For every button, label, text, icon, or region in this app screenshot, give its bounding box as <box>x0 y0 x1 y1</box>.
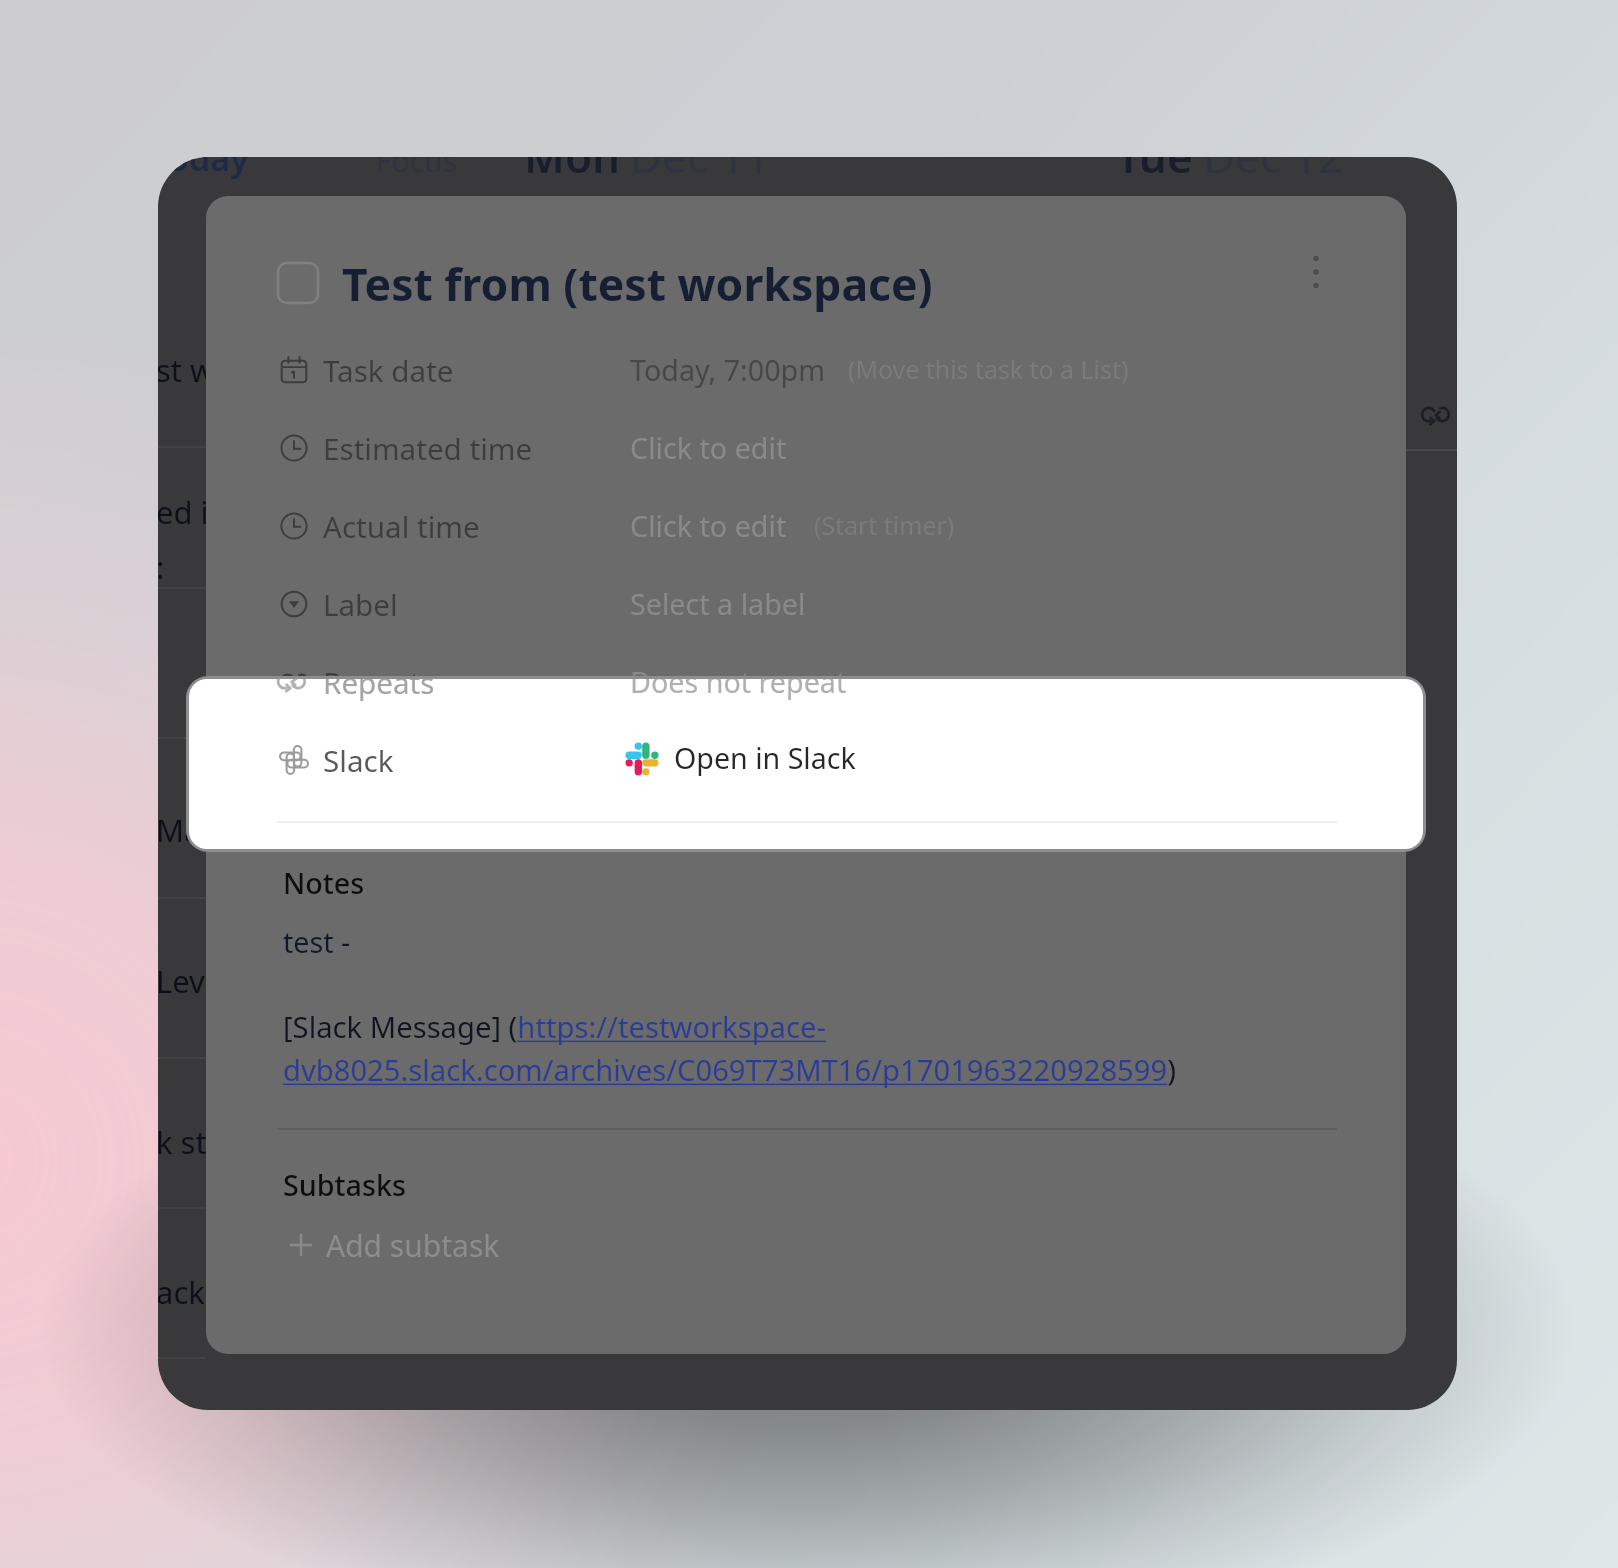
staticText: ack i <box>158 1271 221 1313</box>
staticText: Label <box>323 584 398 624</box>
staticText: Task date <box>323 350 454 390</box>
staticText: Slack <box>323 740 394 780</box>
staticText: Dec 12 <box>1203 157 1343 186</box>
staticText: Leve <box>158 960 223 1002</box>
staticText: st w <box>158 349 215 391</box>
staticText: Open in Slack <box>674 738 856 777</box>
staticText: Click to edit <box>630 428 787 467</box>
staticText: Add subtask <box>326 1225 500 1266</box>
staticText: [Slack Message] (https://testworkspace- <box>283 1007 826 1047</box>
staticText: k sta <box>158 1121 225 1163</box>
staticText: : <box>158 546 165 588</box>
staticText: Subtasks <box>283 1165 406 1204</box>
staticText: oday <box>168 157 249 181</box>
button[interactable]: Complete task <box>278 263 318 303</box>
staticText: Repeats <box>323 679 435 702</box>
staticText: Estimated time <box>323 428 533 468</box>
button[interactable]: Add subtask <box>290 1222 500 1268</box>
button[interactable]: More options <box>1292 248 1340 296</box>
staticText: Mat <box>158 809 213 851</box>
staticText: Tue <box>1116 157 1193 186</box>
staticText: Select a label <box>630 584 806 623</box>
staticText: dvb8025.slack.com/archives/C069T73MT16/p… <box>283 1050 1176 1090</box>
staticText: Focus <box>376 157 458 181</box>
staticText: test - <box>283 922 351 961</box>
staticText: Dec 11 <box>630 157 770 186</box>
staticText: Does not repeat <box>630 679 847 701</box>
staticText: Actual time <box>323 506 480 546</box>
staticText: Today, 7:00pm <box>630 350 826 389</box>
staticText: Repeats <box>323 662 435 702</box>
staticText: (Move this task to a List) <box>848 352 1129 386</box>
staticText: Does not repeat <box>630 662 847 701</box>
staticText: ed inv <box>158 491 244 533</box>
staticText: (Start timer) <box>814 508 955 542</box>
staticText: Mon <box>524 157 621 186</box>
staticText: Click to edit <box>630 506 787 545</box>
staticText: Slack <box>323 740 394 780</box>
staticText: Notes <box>283 863 365 902</box>
staticText: Test from (test workspace) <box>342 253 933 314</box>
